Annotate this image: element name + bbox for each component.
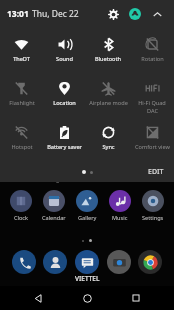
staticText: Thu, Dec 22 [32, 8, 79, 20]
staticText: Music [112, 214, 128, 222]
staticText: Location [53, 99, 76, 107]
staticText: Settings [142, 214, 164, 222]
staticText: Calendar [42, 214, 66, 222]
staticText: DAC [147, 107, 158, 115]
button[interactable]: Hotspot [0, 120, 43, 164]
button[interactable]: Sound [43, 32, 86, 76]
button[interactable]: Contacts [43, 250, 67, 274]
button[interactable]: Rotation [130, 32, 174, 76]
button[interactable]: Location [43, 76, 86, 120]
button[interactable]: Music [104, 190, 136, 222]
button[interactable]: Home [76, 287, 98, 309]
staticText: Rotation [141, 55, 164, 63]
button[interactable]: Comfort view [130, 120, 174, 164]
staticText: TheDT [13, 55, 30, 63]
staticText: Sync [102, 143, 115, 151]
button[interactable]: TheDT [0, 32, 43, 76]
staticText: Hi-Fi Quad [138, 99, 166, 107]
button[interactable]: Battery saver [43, 120, 86, 164]
staticText: Comfort view [135, 143, 170, 151]
staticText: Recorder [143, 176, 167, 184]
button[interactable]: Messages [75, 250, 99, 274]
button[interactable]: User [125, 4, 145, 24]
staticText: EDIT [148, 167, 164, 177]
button[interactable]: Camera [107, 250, 131, 274]
button[interactable]: Bluetooth [86, 32, 130, 76]
staticText: VIETTEL [75, 274, 100, 283]
button[interactable]: Clock [5, 190, 37, 222]
button[interactable]: Hi-Fi Quad [130, 76, 174, 120]
button[interactable]: Collapse [147, 4, 167, 24]
button[interactable]: Phone [12, 250, 36, 274]
button[interactable]: Airplane mode [86, 76, 130, 120]
button[interactable]: Back [27, 287, 49, 309]
button[interactable]: Calendar [38, 190, 70, 222]
button[interactable]: EDIT [146, 166, 166, 178]
button[interactable]: Settings [103, 4, 123, 24]
button[interactable]: Recents [125, 287, 147, 309]
staticText: Clock [14, 214, 29, 222]
staticText: Sound [56, 55, 73, 63]
staticText: Flashlight [9, 99, 35, 107]
button[interactable]: Settings [137, 190, 169, 222]
staticText: Bluetooth [95, 55, 121, 63]
staticText: Gallery [78, 214, 97, 222]
staticText: Hotspot [11, 143, 33, 151]
button[interactable]: Sync [86, 120, 130, 164]
staticText: Manager [41, 176, 65, 184]
button[interactable]: Flashlight [0, 76, 43, 120]
staticText: Battery saver [47, 143, 82, 151]
staticText: Airplane mode [89, 99, 128, 107]
button[interactable]: Chrome [138, 250, 162, 274]
button[interactable]: Gallery [71, 190, 103, 222]
staticText: 13:01 [7, 8, 29, 20]
